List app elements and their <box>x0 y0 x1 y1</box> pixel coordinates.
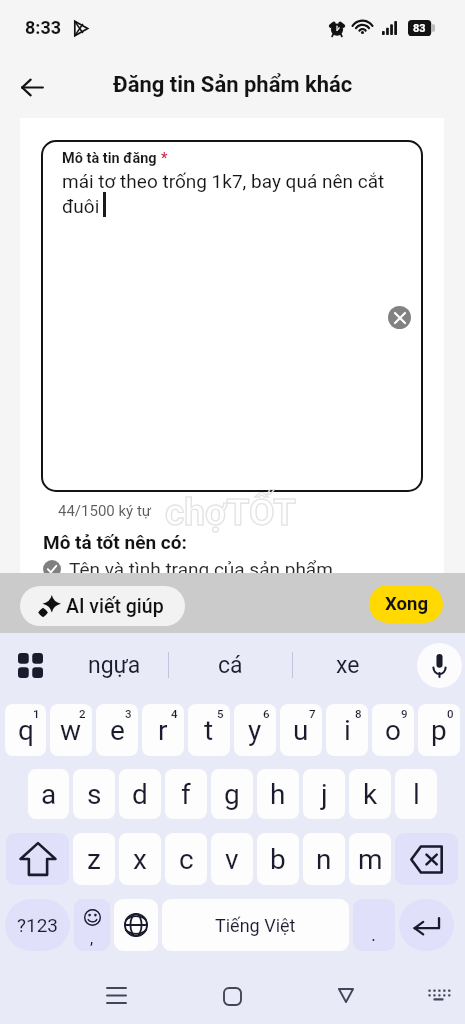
staticText: Mô tà tin đăng <box>62 150 157 167</box>
button[interactable]: AI viết giúp <box>20 586 185 626</box>
button[interactable]: f <box>165 769 207 819</box>
button[interactable]: v <box>211 833 253 885</box>
button[interactable]: Backspace <box>395 833 458 885</box>
staticText: p <box>431 714 447 747</box>
staticText: h <box>270 778 286 811</box>
button[interactable]: Mô tà tin đăng <box>41 140 423 492</box>
staticText: x <box>133 843 147 876</box>
staticText: t <box>204 714 214 747</box>
staticText: s <box>87 778 102 811</box>
staticText: Tiếng Việt <box>215 915 296 936</box>
button[interactable]: cá <box>169 633 292 697</box>
staticText: Mô tả tốt nên có: <box>43 531 187 553</box>
staticText: Đăng tin Sản phẩm khác <box>113 72 353 98</box>
button[interactable]: xe <box>293 633 413 697</box>
button[interactable]: j <box>303 769 345 819</box>
staticText: chợTỐT <box>165 491 296 534</box>
button[interactable]: a <box>28 769 69 819</box>
staticText: 83 <box>413 22 426 35</box>
staticText: . <box>371 923 377 945</box>
button[interactable]: d <box>119 769 161 819</box>
staticText: 7 <box>309 707 316 720</box>
staticText: 8:33 <box>25 17 62 38</box>
button[interactable]: s <box>73 769 115 819</box>
staticText: q <box>18 714 34 747</box>
staticText: i <box>344 714 351 747</box>
staticText: n <box>316 843 332 876</box>
staticText: r <box>158 714 168 747</box>
button[interactable]: Change language <box>114 899 158 951</box>
button[interactable]: Back <box>324 973 368 1017</box>
staticText: cá <box>218 652 243 679</box>
staticText: y <box>248 714 262 747</box>
button[interactable]: n <box>303 833 345 885</box>
button[interactable]: y <box>234 704 276 756</box>
button[interactable]: Clear text <box>388 306 411 329</box>
staticText: 0 <box>447 707 454 720</box>
button[interactable]: Back <box>12 67 52 107</box>
button[interactable]: t <box>188 704 230 756</box>
staticText: k <box>363 778 378 811</box>
staticText: v <box>225 843 239 876</box>
staticText: z <box>87 843 101 876</box>
staticText: u <box>293 714 309 747</box>
staticText: e <box>110 714 125 747</box>
staticText: 44/1500 ký tự <box>58 502 152 520</box>
staticText: w <box>60 714 82 747</box>
button[interactable]: Tiếng Việt <box>162 899 349 951</box>
staticText: mái tơ theo trống 1k7, bay quá nên cắt đ… <box>62 170 409 218</box>
button[interactable]: r <box>142 704 184 756</box>
staticText: AI viết giúp <box>66 595 164 618</box>
button[interactable]: Home <box>210 974 254 1018</box>
button[interactable]: Voice input <box>413 633 465 697</box>
staticText: , <box>90 929 94 948</box>
staticText: g <box>224 778 240 811</box>
staticText: m <box>358 843 383 876</box>
button[interactable]: p <box>418 704 460 756</box>
staticText: Xong <box>385 593 428 615</box>
button[interactable]: z <box>73 833 115 885</box>
staticText: ?123 <box>17 914 59 936</box>
button[interactable]: b <box>257 833 299 885</box>
staticText: 3 <box>125 707 132 720</box>
button[interactable]: ngựa <box>60 633 168 697</box>
staticText: b <box>270 843 286 876</box>
staticText: o <box>385 714 401 747</box>
staticText: j <box>321 778 328 811</box>
button[interactable]: q <box>5 704 46 756</box>
staticText: 2 <box>79 707 86 720</box>
button[interactable]: Clipboard <box>0 633 60 697</box>
staticText: ngựa <box>88 652 141 679</box>
button[interactable]: i <box>326 704 368 756</box>
button[interactable]: l <box>395 769 437 819</box>
button[interactable]: k <box>349 769 391 819</box>
button[interactable]: o <box>372 704 414 756</box>
staticText: * <box>161 150 168 166</box>
staticText: l <box>413 778 420 811</box>
staticText: Tên và tình trạng của sản phẩm <box>69 558 333 580</box>
button[interactable]: Emoji <box>74 899 110 951</box>
button[interactable]: e <box>96 704 138 756</box>
button[interactable]: Xong <box>369 585 443 623</box>
button[interactable]: h <box>257 769 299 819</box>
button[interactable]: g <box>211 769 253 819</box>
staticText: 5 <box>217 707 224 720</box>
button[interactable]: w <box>50 704 92 756</box>
button[interactable]: Recents <box>94 973 138 1017</box>
button[interactable]: u <box>280 704 322 756</box>
staticText: xe <box>336 652 360 679</box>
button[interactable]: x <box>119 833 161 885</box>
button[interactable]: Enter <box>399 899 454 951</box>
staticText: c <box>179 843 194 876</box>
staticText: 8 <box>355 707 362 720</box>
staticText: 9 <box>401 707 408 720</box>
staticText: a <box>41 778 57 811</box>
button[interactable]: Hide keyboard <box>416 973 460 1017</box>
staticText: 6 <box>263 707 270 720</box>
button[interactable]: m <box>349 833 391 885</box>
button[interactable]: c <box>165 833 207 885</box>
button[interactable]: . <box>353 899 395 951</box>
staticText: f <box>181 778 191 811</box>
button[interactable]: ?123 <box>5 899 70 951</box>
button[interactable]: Shift <box>6 833 69 885</box>
